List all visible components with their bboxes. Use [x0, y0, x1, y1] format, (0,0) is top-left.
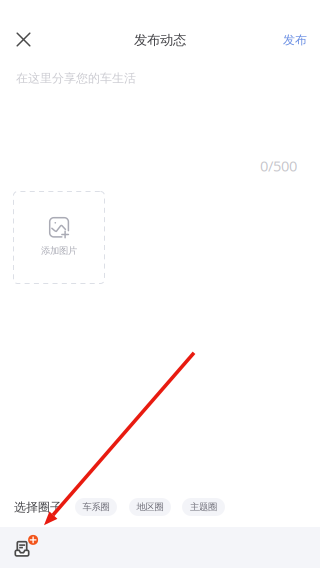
staticText: 车系圈	[82, 501, 109, 513]
staticText: 发布	[283, 33, 307, 47]
button[interactable]: 地区圈	[129, 498, 171, 516]
staticText: 主题圈	[190, 501, 217, 513]
button[interactable]: 关闭	[1, 17, 45, 61]
staticText: 发布动态	[134, 32, 186, 48]
button[interactable]: 发布	[272, 18, 318, 62]
button[interactable]: 草稿箱	[6, 527, 46, 568]
button[interactable]: 主题圈	[182, 498, 225, 516]
staticText: 添加图片	[41, 245, 77, 256]
button[interactable]: 在这里分享您的车生活	[0, 54, 320, 171]
staticText: 在这里分享您的车生活	[16, 71, 136, 86]
staticText: 选择圈子	[14, 500, 62, 515]
staticText: 0/500	[260, 156, 297, 175]
button[interactable]: 添加图片	[13, 191, 105, 284]
button[interactable]: 车系圈	[75, 498, 117, 516]
staticText: 地区圈	[136, 501, 163, 513]
